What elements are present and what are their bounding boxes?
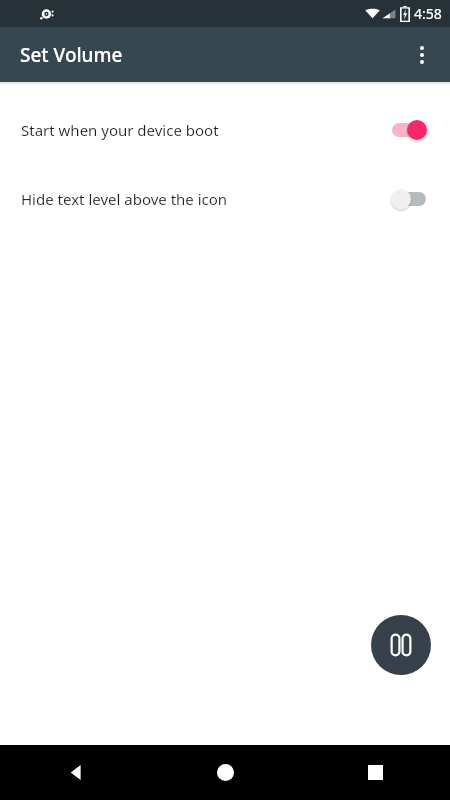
button[interactable]: Off bbox=[386, 184, 432, 214]
button[interactable]: Hide text level above the icon bbox=[0, 176, 450, 222]
staticText: Hide text level above the icon bbox=[21, 189, 386, 209]
staticText: Set Volume bbox=[20, 42, 123, 68]
button[interactable]: Recent apps bbox=[300, 745, 450, 800]
button[interactable]: Start when your device boot bbox=[0, 107, 450, 153]
button[interactable]: More options bbox=[400, 33, 444, 77]
button[interactable]: Back bbox=[0, 745, 150, 800]
button[interactable]: Pause volume service bbox=[371, 615, 431, 675]
staticText: Start when your device boot bbox=[21, 120, 386, 140]
button[interactable]: Home bbox=[150, 745, 300, 800]
button[interactable]: On bbox=[386, 115, 432, 145]
staticText: 4:58 bbox=[414, 4, 442, 23]
